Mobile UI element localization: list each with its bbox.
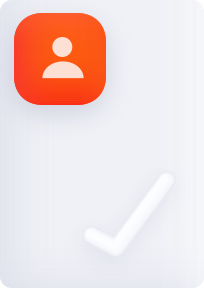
button[interactable]: Contacts app icon	[14, 13, 106, 105]
